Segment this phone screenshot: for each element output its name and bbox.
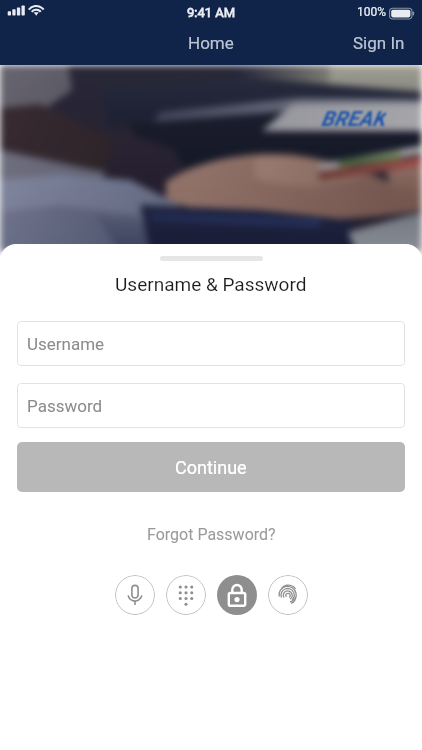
staticText: Username: [27, 334, 105, 354]
staticText: Forgot Password?: [147, 525, 276, 544]
button[interactable]: Continue: [17, 442, 405, 492]
staticText: 100%: [357, 5, 387, 19]
button[interactable]: Voice: [115, 575, 155, 615]
button[interactable]: Keypad: [166, 575, 206, 615]
staticText: 9:41 AM: [187, 5, 236, 20]
staticText: Continue: [175, 457, 247, 478]
button[interactable]: Fingerprint: [268, 575, 308, 615]
staticText: Username & Password: [115, 273, 307, 295]
staticText: Home: [188, 33, 234, 53]
staticText: Sign In: [353, 33, 405, 53]
staticText: BREAK: [321, 107, 386, 132]
button[interactable]: Password lock: [217, 575, 257, 615]
button[interactable]: Username: [17, 321, 405, 366]
button[interactable]: Password: [17, 383, 405, 428]
staticText: Password: [27, 396, 103, 416]
button[interactable]: Home: [176, 30, 246, 56]
button[interactable]: Forgot Password?: [139, 521, 284, 548]
button[interactable]: Sign In: [341, 30, 417, 56]
